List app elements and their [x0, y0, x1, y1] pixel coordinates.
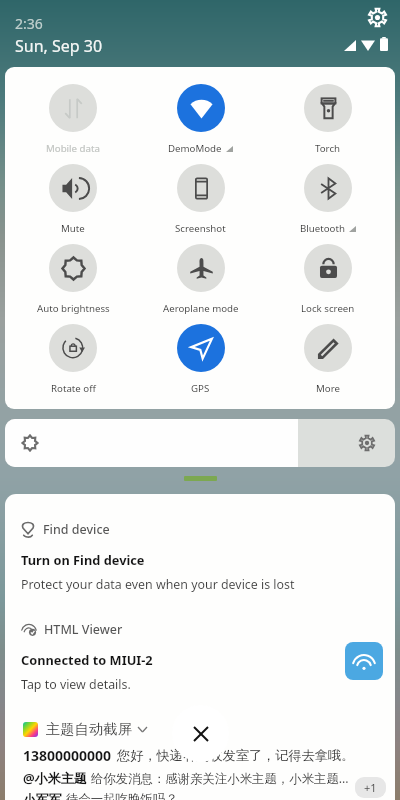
button[interactable]: HTML Viewer — [5, 604, 395, 692]
staticText: +1 — [364, 780, 377, 795]
staticText: HTML Viewer — [44, 621, 123, 638]
staticText: Connected to MIUI-2 — [21, 651, 153, 668]
button[interactable] — [5, 419, 395, 467]
button[interactable]: More — [264, 324, 391, 395]
staticText: Lock screen — [301, 302, 355, 315]
button[interactable]: Bluetooth — [264, 164, 391, 235]
staticText: Bluetooth — [300, 222, 345, 235]
button[interactable]: Screenshot — [137, 164, 264, 235]
button[interactable]: Auto brightness — [9, 244, 137, 315]
button[interactable]: Aeroplane mode — [137, 244, 264, 315]
staticText: Tap to view details. — [21, 676, 131, 692]
staticText: GPS — [191, 382, 210, 395]
staticText: Turn on Find device — [21, 551, 145, 568]
staticText: Find device — [43, 521, 110, 538]
staticText: 您好，快递补到收发室了，记得去拿哦。 — [117, 747, 355, 764]
button[interactable]: Find device — [5, 494, 395, 604]
staticText: 2:36 — [15, 14, 43, 33]
staticText: Aeroplane mode — [163, 302, 239, 315]
staticText: 待会一起吃晚饭吗？ — [66, 791, 178, 800]
button[interactable]: Mobile data — [9, 84, 137, 155]
staticText: Torch — [315, 142, 341, 155]
button[interactable]: Close — [172, 705, 229, 762]
button[interactable]: Lock screen — [264, 244, 391, 315]
staticText: 主题自动截屏 — [46, 720, 132, 738]
button[interactable]: Rotate off — [9, 324, 137, 395]
button[interactable]: +1 — [355, 777, 386, 798]
staticText: @小米主题 — [23, 769, 87, 787]
staticText: 小军军 — [23, 791, 62, 800]
button[interactable]: DemoMode — [137, 84, 264, 155]
staticText: Rotate off — [51, 382, 96, 395]
staticText: Auto brightness — [37, 302, 110, 315]
staticText: More — [316, 382, 340, 395]
button[interactable]: 主题自动截屏 — [5, 692, 395, 800]
staticText: 13800000000 — [23, 746, 112, 765]
staticText: DemoMode — [168, 142, 222, 155]
button[interactable]: GPS — [137, 324, 264, 395]
staticText: Protect your data even when your device … — [21, 576, 295, 593]
staticText: Screenshot — [175, 222, 226, 235]
staticText: 给你发消息：感谢亲关注小米主题，小米主题… — [91, 770, 349, 787]
button[interactable]: Torch — [264, 84, 391, 155]
staticText: Mute — [61, 222, 85, 235]
staticText: Sun, Sep 30 — [15, 35, 103, 57]
staticText: Mobile data — [46, 142, 100, 155]
button[interactable]: Mute — [9, 164, 137, 235]
button[interactable]: Settings — [368, 8, 387, 27]
